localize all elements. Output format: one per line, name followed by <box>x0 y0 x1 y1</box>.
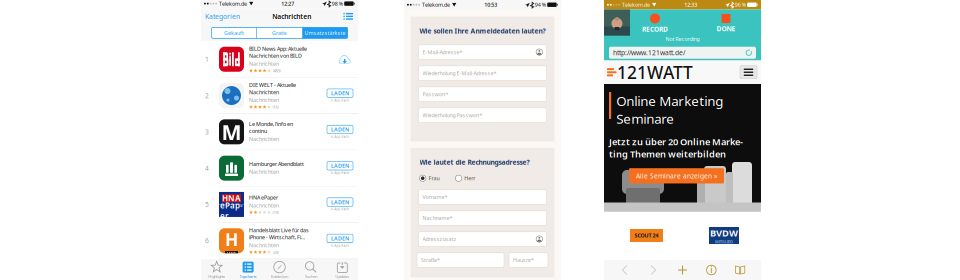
button[interactable]: 1 <box>201 41 358 77</box>
button[interactable]: 2 <box>201 78 358 113</box>
staticText: 98 % <box>332 0 343 7</box>
staticText: 96 % <box>735 1 746 8</box>
staticText: Nachrichten <box>272 12 311 21</box>
button[interactable]: Vorname* <box>418 190 546 204</box>
button[interactable]: Menü <box>740 66 761 79</box>
button[interactable]: Wiederholung Passwort* <box>418 108 546 122</box>
staticText: Telekom.de <box>622 1 650 8</box>
staticText: (19) <box>272 210 278 215</box>
staticText: HNA ePaper <box>249 194 278 201</box>
button[interactable]: LADEN <box>325 161 355 175</box>
button[interactable]: Passwort* <box>418 87 546 101</box>
button[interactable]: LADEN <box>325 198 355 211</box>
staticText: 4 <box>205 164 209 173</box>
button[interactable]: 5 <box>201 186 358 222</box>
button[interactable]: Topcharts <box>232 259 264 280</box>
button[interactable]: Teilen <box>703 262 719 278</box>
staticText: RECORD <box>642 25 668 34</box>
button[interactable]: Hausnr.* <box>509 253 548 267</box>
button[interactable]: Laden <box>337 53 352 66</box>
button[interactable]: Frau <box>419 175 439 182</box>
staticText: (16) <box>272 104 278 110</box>
staticText: Nachrichten <box>249 96 279 103</box>
staticText: 12:33 <box>684 1 697 8</box>
button[interactable]: LADEN <box>325 234 355 247</box>
staticText: Nachrichten <box>249 135 279 142</box>
staticText: LADEN <box>331 126 349 133</box>
staticText: LIVE <box>227 251 236 256</box>
button[interactable]: Gratis <box>257 27 302 38</box>
staticText: Online Marketing Seminare <box>616 92 723 127</box>
staticText: Jetzt zu über 20 Online Marke- ting Them… <box>609 135 743 160</box>
button[interactable]: LADEN <box>325 125 355 138</box>
button[interactable]: RECORD <box>630 11 680 35</box>
button[interactable]: Liste <box>343 8 358 24</box>
button[interactable]: Highlights <box>201 259 232 280</box>
staticText: Handelsblatt Live für das iPhone - Wirts… <box>249 227 309 241</box>
staticText: In-App-Käufe <box>330 171 349 175</box>
staticText: In-App-Käufe <box>330 244 349 247</box>
staticText: Wie lautet die Rechnungsadresse? <box>419 158 529 167</box>
staticText: Telekom.de <box>219 0 247 7</box>
button[interactable]: Herr <box>455 175 475 182</box>
button[interactable]: 3 <box>201 114 358 150</box>
staticText: SCOUT 24 <box>634 232 658 239</box>
staticText: Nachrichten <box>249 242 279 249</box>
button[interactable]: Wiederholung E-Mail-Adresse* <box>418 66 546 80</box>
staticText: Nachrichten <box>249 60 279 67</box>
button[interactable]: Umsatzstärkste <box>303 27 348 38</box>
staticText: In-App-Käufe <box>330 99 349 102</box>
button[interactable]: DONE <box>705 11 747 35</box>
staticText: Alle Seminare anzeigen » <box>636 171 717 180</box>
button[interactable]: Vorwärts <box>646 262 662 278</box>
staticText: 12:27 <box>281 0 294 7</box>
staticText: Nachname* <box>422 214 452 222</box>
staticText: Entdecken <box>271 274 288 279</box>
button[interactable]: Updates <box>327 259 358 280</box>
staticText: Umsatzstärkste <box>305 29 346 36</box>
button[interactable]: Alle Seminare anzeigen » <box>629 168 724 183</box>
staticText: ePaper <box>220 200 243 221</box>
button[interactable]: Kategorien <box>201 8 240 24</box>
staticText: 5 <box>205 200 209 209</box>
staticText: Updates <box>335 274 349 279</box>
button[interactable]: Entdecken <box>264 259 295 280</box>
staticText: DONE <box>716 24 735 33</box>
button[interactable]: 6 <box>201 223 358 259</box>
staticText: 2 <box>205 91 209 100</box>
button[interactable]: 4 <box>201 150 358 186</box>
staticText: In-App-Käufe <box>330 207 349 211</box>
staticText: LADEN <box>331 90 349 97</box>
staticText: 1 <box>205 55 209 64</box>
staticText: LADEN <box>331 235 349 242</box>
button[interactable]: Neuer Tab <box>674 262 690 278</box>
staticText: Not Recording <box>665 35 699 43</box>
button[interactable]: E-Mail-Adresse* <box>418 45 546 59</box>
staticText: Wie sollen Ihre Anmeldedaten lauten? <box>419 26 545 35</box>
staticText: BILD News App: Aktuelle Nachrichten von … <box>249 45 307 59</box>
staticText: 121WATT <box>617 61 693 84</box>
button[interactable]: Straße* <box>417 253 504 267</box>
staticText: Topcharts <box>240 274 257 279</box>
staticText: 94 % <box>535 1 546 8</box>
staticText: Wiederholung E-Mail-Adresse* <box>422 70 496 77</box>
staticText: LADEN <box>331 162 349 169</box>
button[interactable]: LADEN <box>325 89 355 102</box>
staticText: Gekauft <box>224 29 244 36</box>
staticText: MITGLIED <box>715 239 733 244</box>
staticText: Herr <box>464 175 475 182</box>
button[interactable]: Nachname* <box>418 211 546 225</box>
staticText: Le Monde, l'info en continu <box>249 120 293 135</box>
staticText: Kategorien <box>205 12 240 21</box>
staticText: H <box>225 228 238 251</box>
staticText: In-App-Käufe <box>330 135 349 138</box>
button[interactable]: Zurück <box>617 262 633 278</box>
button[interactable]: Suchen <box>295 259 327 280</box>
staticText: Telekom.de <box>422 1 450 8</box>
button[interactable]: Lesezeichen <box>732 262 748 278</box>
staticText: (483) <box>272 68 280 73</box>
staticText: Wiederholung Passwort* <box>422 112 482 119</box>
button[interactable]: Gekauft <box>211 27 256 38</box>
button[interactable]: Adresszusatz <box>418 232 546 246</box>
staticText: Gratis <box>272 29 287 36</box>
